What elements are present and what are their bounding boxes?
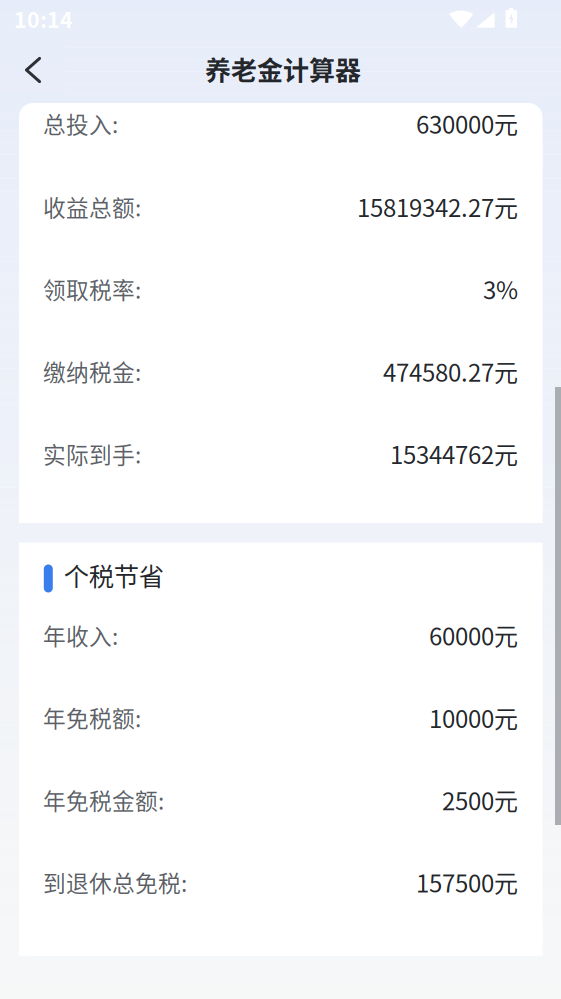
staticText: 3% [483, 271, 518, 306]
staticText: 收益总额: [43, 190, 141, 223]
staticText: 总投入: [43, 107, 118, 140]
staticText: 60000元 [429, 618, 518, 653]
staticText: 年免税额: [43, 701, 141, 734]
staticText: 630000元 [416, 106, 518, 141]
staticText: 实际到手: [43, 437, 141, 470]
staticText: 养老金计算器 [205, 50, 361, 88]
staticText: 474580.27元 [383, 354, 518, 389]
staticText: 到退休总免税: [43, 866, 187, 898]
staticText: 10000元 [429, 700, 518, 735]
staticText: 缴纳税金: [43, 355, 141, 388]
button[interactable]: 返回 [0, 37, 66, 103]
staticText: 年收入: [43, 619, 118, 651]
staticText: 2500元 [442, 782, 518, 817]
staticText: 15344762元 [390, 436, 518, 471]
staticText: 领取税率: [43, 272, 141, 305]
staticText: 年免税金额: [43, 783, 164, 816]
staticText: 个税节省 [64, 556, 164, 593]
staticText: 157500元 [416, 865, 518, 899]
staticText: 15819342.27元 [357, 189, 518, 224]
staticText: 10:14 [14, 3, 73, 34]
